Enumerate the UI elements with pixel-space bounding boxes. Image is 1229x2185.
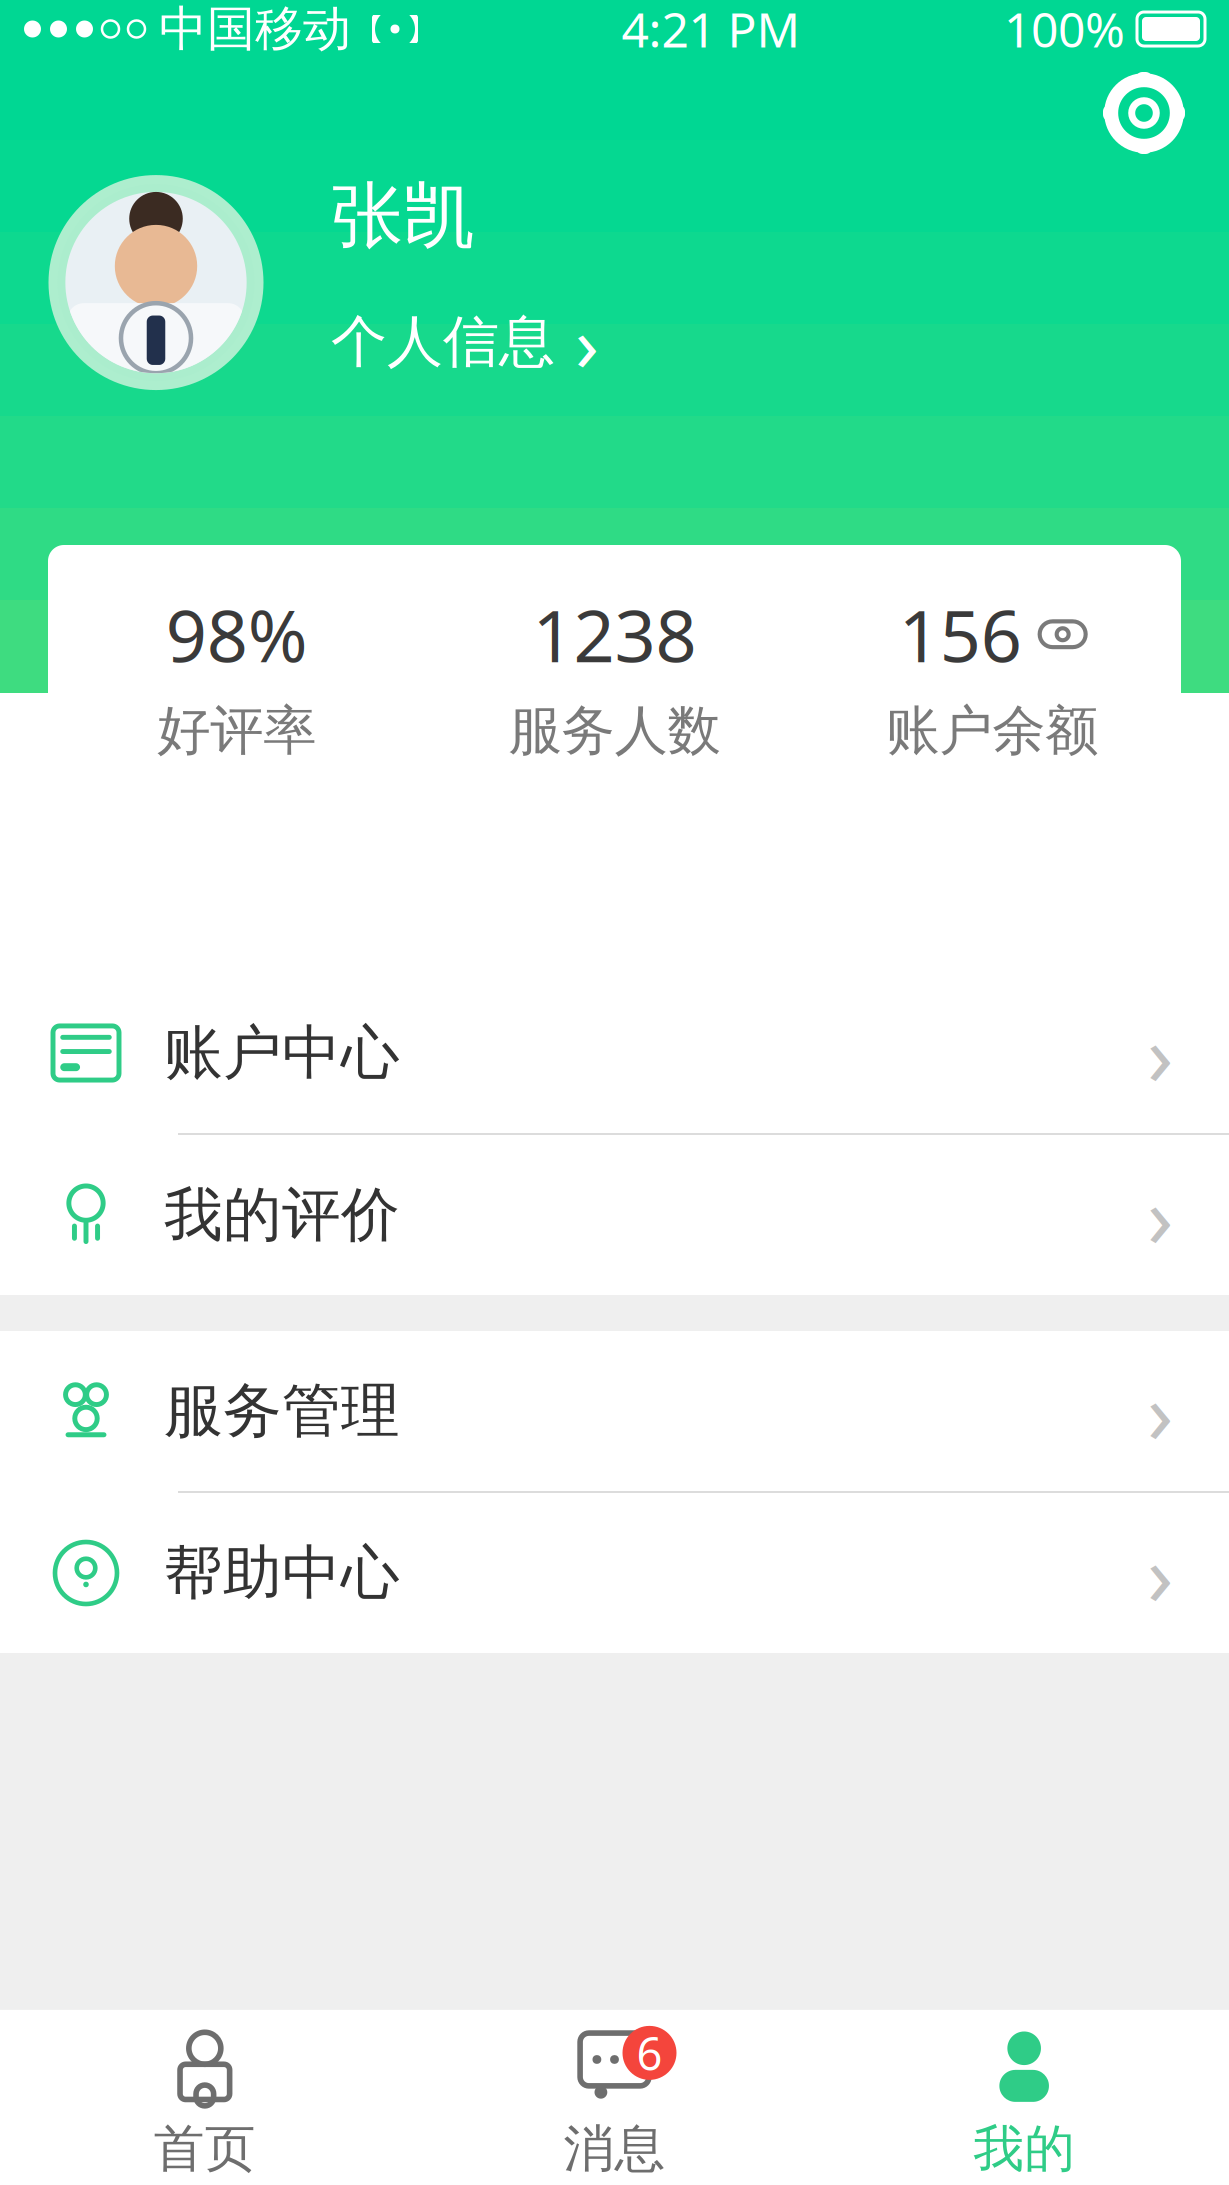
button[interactable]: 首页 (0, 2010, 410, 2185)
staticText: 张凯 (331, 172, 475, 260)
staticText: 消息 (563, 2118, 665, 2180)
staticText: 个人信息 (331, 307, 555, 376)
staticText: › (1147, 996, 1173, 1110)
staticText: 账户余额 (886, 698, 1098, 764)
button[interactable]: 我的评价 (0, 1135, 1229, 1295)
staticText: 98% (166, 586, 308, 682)
staticText: 4:21 PM (621, 0, 800, 61)
staticText: 中国移动 (159, 0, 351, 58)
staticText: 首页 (154, 2118, 256, 2180)
staticText: 我的 (973, 2118, 1075, 2180)
staticText: › (1147, 1516, 1173, 1630)
staticText: › (1147, 1354, 1173, 1468)
staticText: 服务人数 (508, 698, 720, 764)
button[interactable]: 账户中心 (0, 973, 1229, 1135)
button[interactable]: 我的 (819, 2010, 1229, 2185)
staticText: › (575, 290, 599, 393)
button[interactable]: 张凯 (0, 164, 1229, 393)
staticText: › (1147, 1158, 1173, 1272)
staticText: 156 (899, 586, 1022, 682)
staticText: 账户中心 (164, 1017, 400, 1089)
button[interactable]: 6 (410, 2010, 819, 2185)
staticText: 帮助中心 (164, 1537, 400, 1609)
staticText: 100% (1004, 0, 1125, 61)
staticText: 1238 (532, 586, 696, 682)
button[interactable]: Settings (1073, 58, 1229, 164)
button[interactable]: 服务管理 (0, 1331, 1229, 1493)
staticText: 服务管理 (164, 1375, 400, 1447)
staticText: 我的评价 (164, 1179, 400, 1251)
staticText: 6 (636, 2023, 662, 2083)
button[interactable]: 帮助中心 (0, 1493, 1229, 1653)
staticText: 好评率 (157, 698, 316, 764)
